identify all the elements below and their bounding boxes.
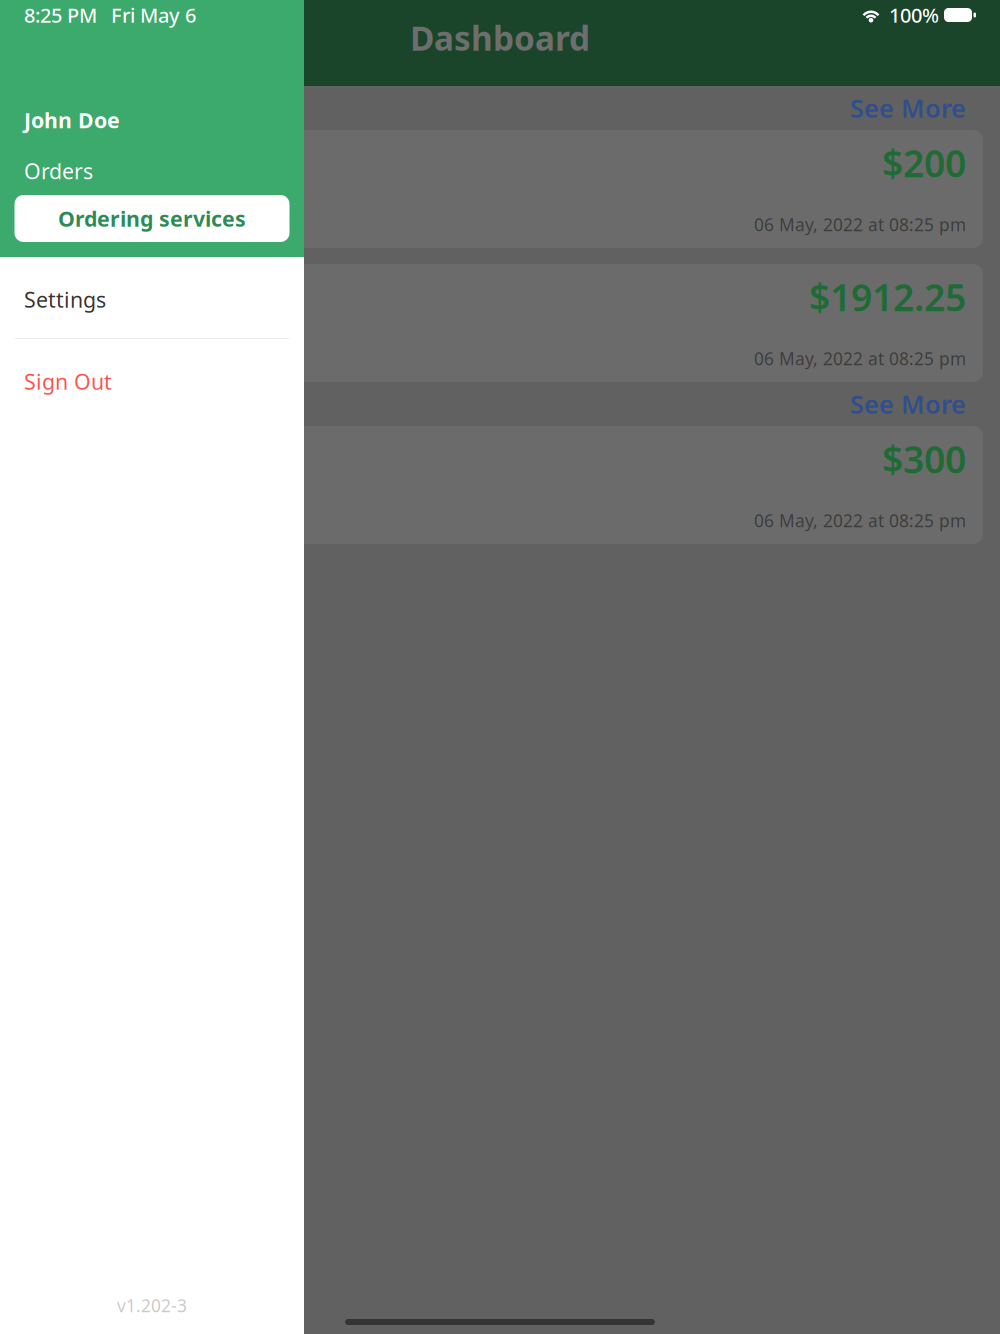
staticText: $1912.25 <box>809 272 966 322</box>
button[interactable]: See More <box>17 382 983 426</box>
staticText: 06 May, 2022 at 08:25 pm <box>754 213 966 236</box>
staticText: See More <box>850 91 966 125</box>
staticText: 06 May, 2022 at 08:25 pm <box>754 347 966 370</box>
button[interactable]: Sign Out <box>0 360 304 403</box>
staticText: v1.202-3 <box>117 1294 187 1317</box>
staticText: John Doe <box>24 106 120 134</box>
staticText: 06 May, 2022 at 08:25 pm <box>754 509 966 532</box>
button[interactable]: John Doe <box>0 102 304 138</box>
button[interactable]: Settings <box>0 278 304 321</box>
staticText: 8:25 PM <box>24 2 97 28</box>
staticText: Ordering services <box>58 204 246 233</box>
staticText: 100% <box>889 2 939 28</box>
staticText: Sign Out <box>24 367 112 396</box>
staticText: Dashboard <box>410 16 590 60</box>
staticText: $200 <box>882 138 966 188</box>
staticText: Orders <box>24 157 93 185</box>
button[interactable]: Ordering services <box>14 195 289 242</box>
staticText: See More <box>850 387 966 421</box>
staticText: Fri May 6 <box>111 2 196 28</box>
staticText: $300 <box>882 434 966 484</box>
button[interactable]: Orders <box>0 154 304 188</box>
staticText: Settings <box>24 285 106 314</box>
button[interactable]: See More <box>17 86 983 130</box>
